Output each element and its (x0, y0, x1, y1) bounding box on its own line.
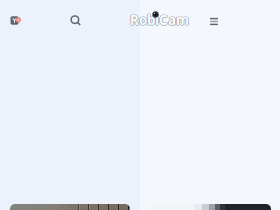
button[interactable]: Menu (203, 10, 225, 32)
button[interactable]: Workshop photo (10, 204, 130, 210)
button[interactable]: RobiCam home (130, 11, 192, 27)
button[interactable]: Studio photo (150, 204, 271, 210)
staticText: RobiCam (130, 11, 189, 29)
staticText: RobiCam (131, 11, 190, 29)
button[interactable]: Cart (3, 9, 25, 31)
staticText: RobiCam (129, 11, 188, 29)
staticText: RobiCam (130, 10, 189, 28)
button[interactable]: Search (64, 9, 86, 31)
staticText: RobiCam (130, 12, 189, 29)
